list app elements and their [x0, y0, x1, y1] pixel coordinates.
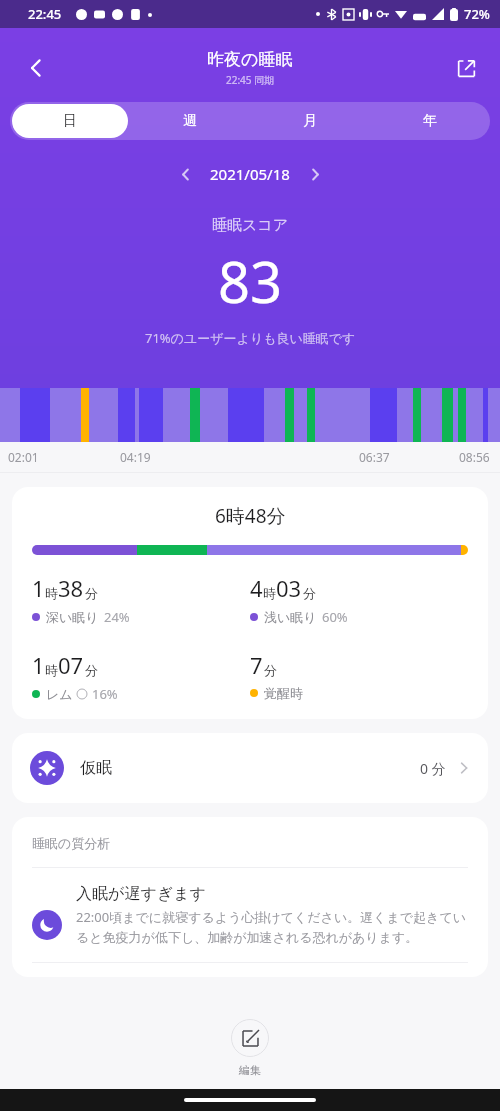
staticText: 22:00頃までに就寝するよう心掛けてください。遅くまで起きていると免疫力が低下…: [76, 908, 468, 946]
staticText: 38: [58, 573, 84, 603]
staticText: 04:19: [120, 449, 151, 465]
staticText: 08:56: [459, 449, 490, 465]
staticText: 分: [85, 585, 98, 601]
staticText: 1: [32, 573, 45, 603]
staticText: 72%: [464, 5, 490, 23]
staticText: 覚醒時: [264, 685, 303, 701]
staticText: 16%: [92, 685, 118, 703]
staticText: 分: [85, 662, 98, 678]
staticText: 07: [58, 650, 84, 680]
staticText: 03: [276, 573, 302, 603]
staticText: 睡眠スコア: [212, 216, 289, 235]
button[interactable]: 編集: [211, 1013, 289, 1083]
staticText: 1: [32, 650, 45, 680]
staticText: 分: [303, 585, 316, 601]
staticText: レム: [46, 686, 73, 702]
staticText: 7: [250, 650, 263, 680]
button[interactable]: Previous day: [168, 157, 202, 191]
staticText: 昨夜の睡眠: [207, 49, 293, 70]
staticText: 浅い眠り: [264, 609, 317, 625]
staticText: 71%のユーザーよりも良い睡眠です: [145, 329, 356, 347]
button[interactable]: 年: [372, 104, 488, 138]
staticText: 月: [303, 112, 317, 130]
staticText: 22:45: [28, 5, 62, 23]
button[interactable]: 仮眠: [12, 733, 488, 803]
staticText: 仮眠: [80, 758, 112, 778]
staticText: 0 分: [420, 759, 446, 778]
staticText: 22:45 同期: [226, 73, 275, 87]
button[interactable]: 日: [12, 104, 128, 138]
staticText: 06:37: [359, 449, 390, 465]
staticText: 週: [183, 112, 197, 130]
button[interactable]: 週: [132, 104, 248, 138]
staticText: 2021/05/18: [210, 164, 290, 184]
staticText: 日: [63, 112, 77, 130]
staticText: 6時48分: [215, 503, 286, 529]
staticText: 02:01: [8, 449, 39, 465]
staticText: 時: [45, 585, 58, 601]
staticText: 入眠が遅すぎます: [76, 884, 206, 904]
button[interactable]: 月: [252, 104, 368, 138]
button[interactable]: 6時48分: [12, 487, 488, 719]
staticText: 4: [250, 573, 263, 603]
button[interactable]: Share: [446, 48, 486, 88]
button[interactable]: Back: [14, 46, 58, 90]
staticText: 編集: [239, 1063, 261, 1077]
staticText: 時: [45, 662, 58, 678]
staticText: 睡眠の質分析: [32, 835, 111, 851]
staticText: 分: [264, 662, 277, 678]
staticText: 24%: [104, 608, 130, 626]
staticText: 深い眠り: [46, 609, 99, 625]
staticText: 60%: [322, 608, 348, 626]
staticText: 年: [423, 112, 437, 130]
staticText: 83: [218, 243, 283, 319]
button[interactable]: Next day: [298, 157, 332, 191]
staticText: 時: [263, 585, 276, 601]
button[interactable]: 睡眠の質分析: [12, 817, 488, 977]
